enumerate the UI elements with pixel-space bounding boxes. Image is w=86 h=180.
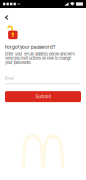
button[interactable]: Submit <box>5 91 81 102</box>
staticText: Forgot your password? <box>5 44 55 50</box>
staticText: Submit <box>35 94 50 99</box>
staticText: Enter your email address below and we'll… <box>5 52 75 65</box>
staticText: Email <box>5 76 14 80</box>
button[interactable]: Back <box>0 6 13 22</box>
